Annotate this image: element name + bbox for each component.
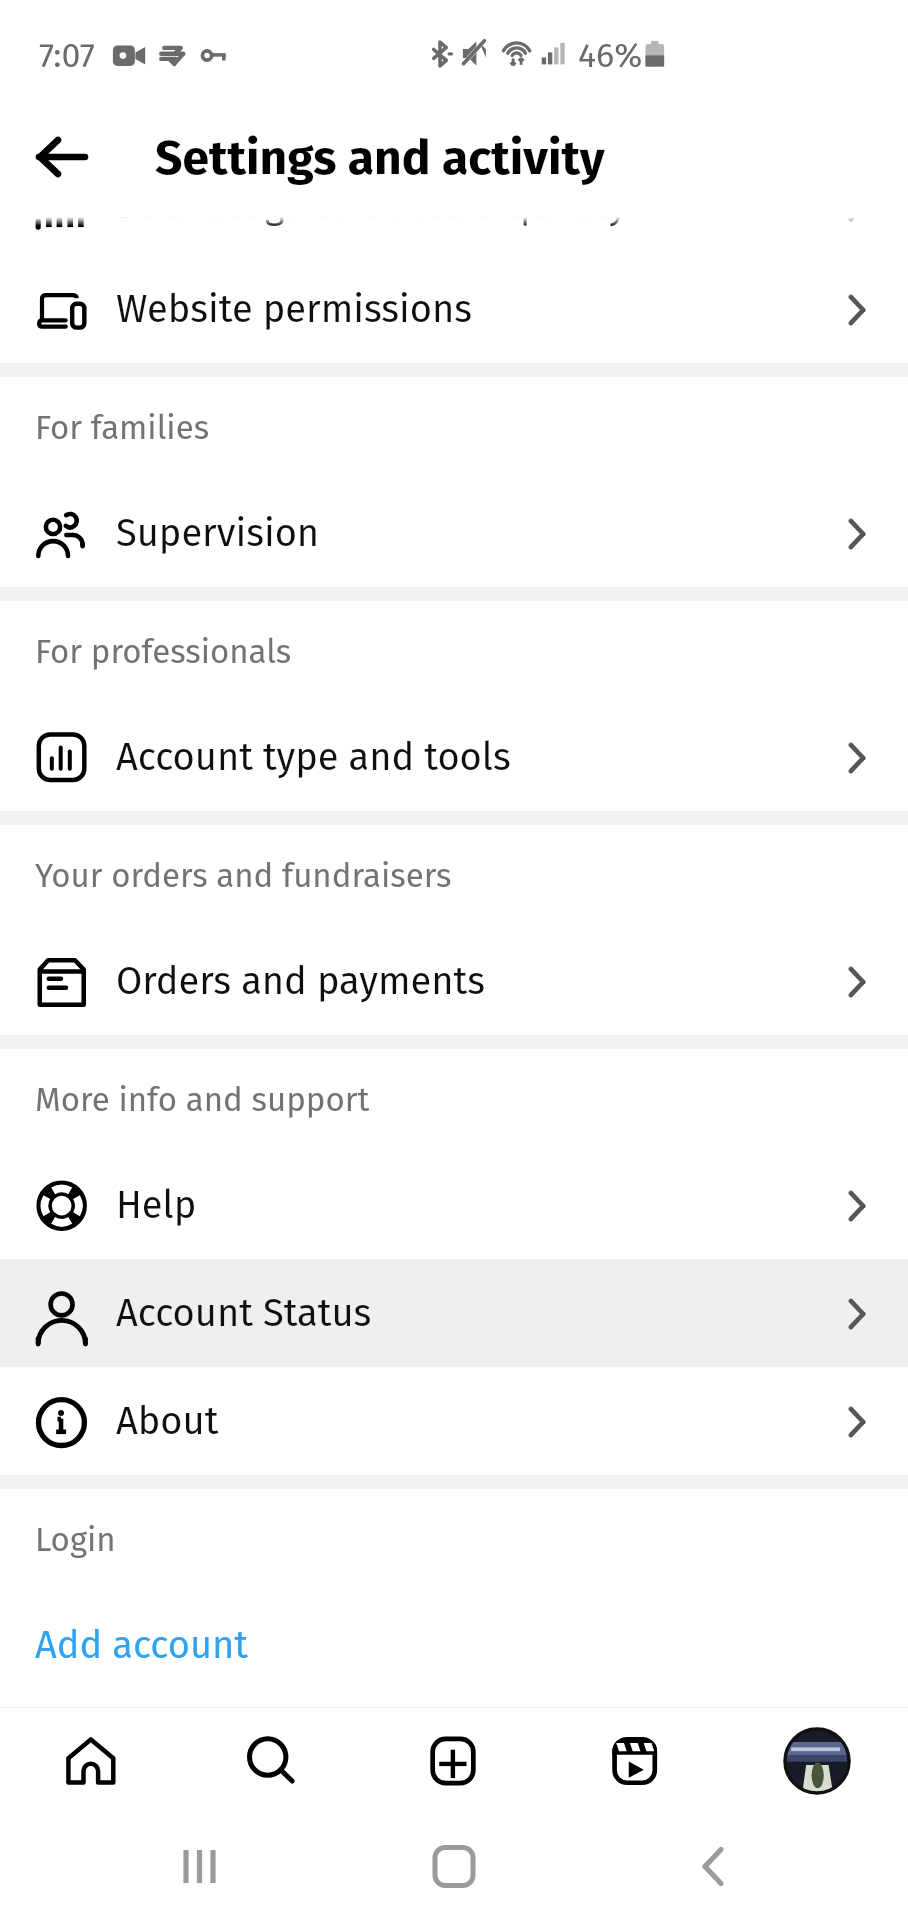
staticText: Your orders and fundraisers (35, 856, 452, 896)
staticText: Account Status (116, 1290, 372, 1336)
staticText: Supervision (116, 510, 320, 556)
button[interactable]: Home (0, 1708, 181, 1813)
button[interactable]: Account Status (0, 1259, 908, 1367)
button[interactable]: Website permissions (0, 255, 908, 363)
staticText: More info and support (35, 1080, 370, 1120)
button[interactable]: Help (0, 1151, 908, 1259)
button[interactable]: About (0, 1367, 908, 1475)
staticText: Help (116, 1182, 197, 1228)
button[interactable]: Reels (544, 1708, 726, 1813)
button[interactable]: Profile (726, 1708, 908, 1813)
staticText: 7:07 (39, 35, 95, 76)
button[interactable]: Search (181, 1708, 362, 1813)
staticText: Website permissions (116, 286, 472, 332)
staticText: For professionals (35, 632, 292, 672)
staticText: Settings and activity (155, 129, 605, 187)
staticText: Login (35, 1520, 116, 1560)
button[interactable]: Add account (0, 1591, 908, 1699)
button[interactable]: Back (14, 110, 108, 204)
staticText: Add account (35, 1622, 249, 1668)
button[interactable]: Account type and tools (0, 703, 908, 811)
staticText: Account type and tools (116, 734, 511, 780)
staticText: Data usage and media quality (116, 182, 628, 228)
button[interactable]: Orders and payments (0, 927, 908, 1035)
button[interactable]: Create (362, 1708, 544, 1813)
button[interactable]: Supervision (0, 479, 908, 587)
button[interactable]: Data usage and media quality (0, 151, 908, 255)
staticText: Orders and payments (116, 958, 485, 1004)
staticText: About (116, 1398, 219, 1444)
staticText: For families (35, 408, 210, 448)
staticText: 46% (578, 35, 643, 76)
